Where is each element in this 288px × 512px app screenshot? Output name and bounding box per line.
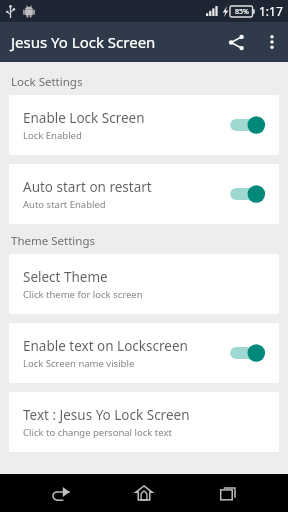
button[interactable]: Toggle [229,114,267,136]
button[interactable]: Recent apps [204,474,252,512]
button[interactable]: Share [216,22,256,62]
staticText: Theme Settings [11,233,288,249]
staticText: Click theme for lock screen [23,288,143,301]
button[interactable]: Enable text on Lockscreen [9,323,279,383]
button[interactable]: Enable Lock Screen [9,95,279,155]
button[interactable]: Select Theme [9,254,279,314]
button[interactable]: Text : Jesus Yo Lock Screen [9,392,279,452]
button[interactable]: More options [256,26,288,58]
button[interactable]: Toggle [229,342,267,364]
staticText: 85% [235,7,249,17]
staticText: Jesus Yo Lock Screen [11,32,156,52]
staticText: Enable text on Lockscreen [23,337,188,355]
staticText: Lock Screen name visible [23,357,135,370]
button[interactable]: Home [120,474,168,512]
button[interactable]: Auto start on restart [9,164,279,224]
staticText: 1:17 [259,3,283,19]
button[interactable]: Back [36,474,84,512]
staticText: Auto start Enabled [23,198,106,211]
staticText: Text : Jesus Yo Lock Screen [23,406,190,424]
staticText: Auto start on restart [23,178,152,196]
staticText: Lock Enabled [23,129,82,142]
staticText: Enable Lock Screen [23,109,145,127]
staticText: Lock Settings [11,74,288,90]
button[interactable]: Toggle [229,183,267,205]
staticText: Click to change personal lock text [23,426,172,439]
staticText: Select Theme [23,268,108,286]
